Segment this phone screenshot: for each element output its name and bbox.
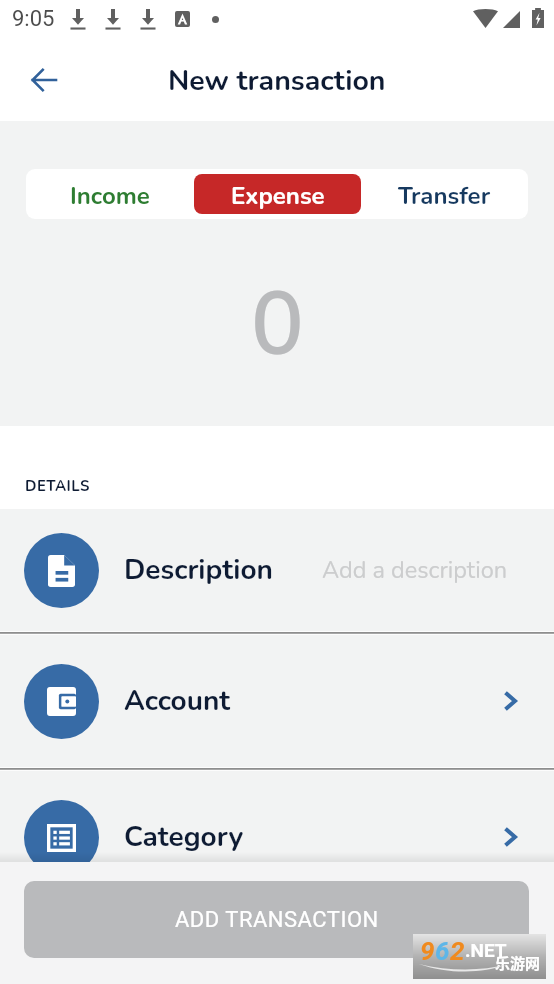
staticText: 2 [450,936,465,966]
staticText: 6 [435,936,450,966]
staticText: .NET [465,939,507,961]
staticText: Account [124,682,231,720]
staticText: Category [124,818,244,856]
staticText: DETAILS [25,476,91,496]
button[interactable]: Back [20,57,66,103]
staticText: New transaction [168,61,386,100]
other: Open [490,816,532,858]
button[interactable]: Description [0,509,554,631]
button[interactable]: Account [0,635,554,767]
button[interactable]: Expense [194,174,361,214]
button[interactable]: Transfer [361,169,528,219]
button[interactable]: Income [26,169,194,219]
staticText: Expense [231,180,325,213]
other: Open [490,680,532,722]
staticText: ADD TRANSACTION [175,907,379,933]
staticText: 9 [420,936,435,966]
staticText: Income [70,180,150,213]
staticText: Add a description [322,554,508,586]
staticText: 9:05 [12,6,55,32]
staticText: 0 [251,264,304,384]
staticText: Description [124,551,273,589]
staticText: Transfer [398,180,491,213]
button[interactable]: ADD TRANSACTION [24,881,529,958]
staticText: 乐游网 [495,952,541,974]
button[interactable]: Category [0,771,554,903]
